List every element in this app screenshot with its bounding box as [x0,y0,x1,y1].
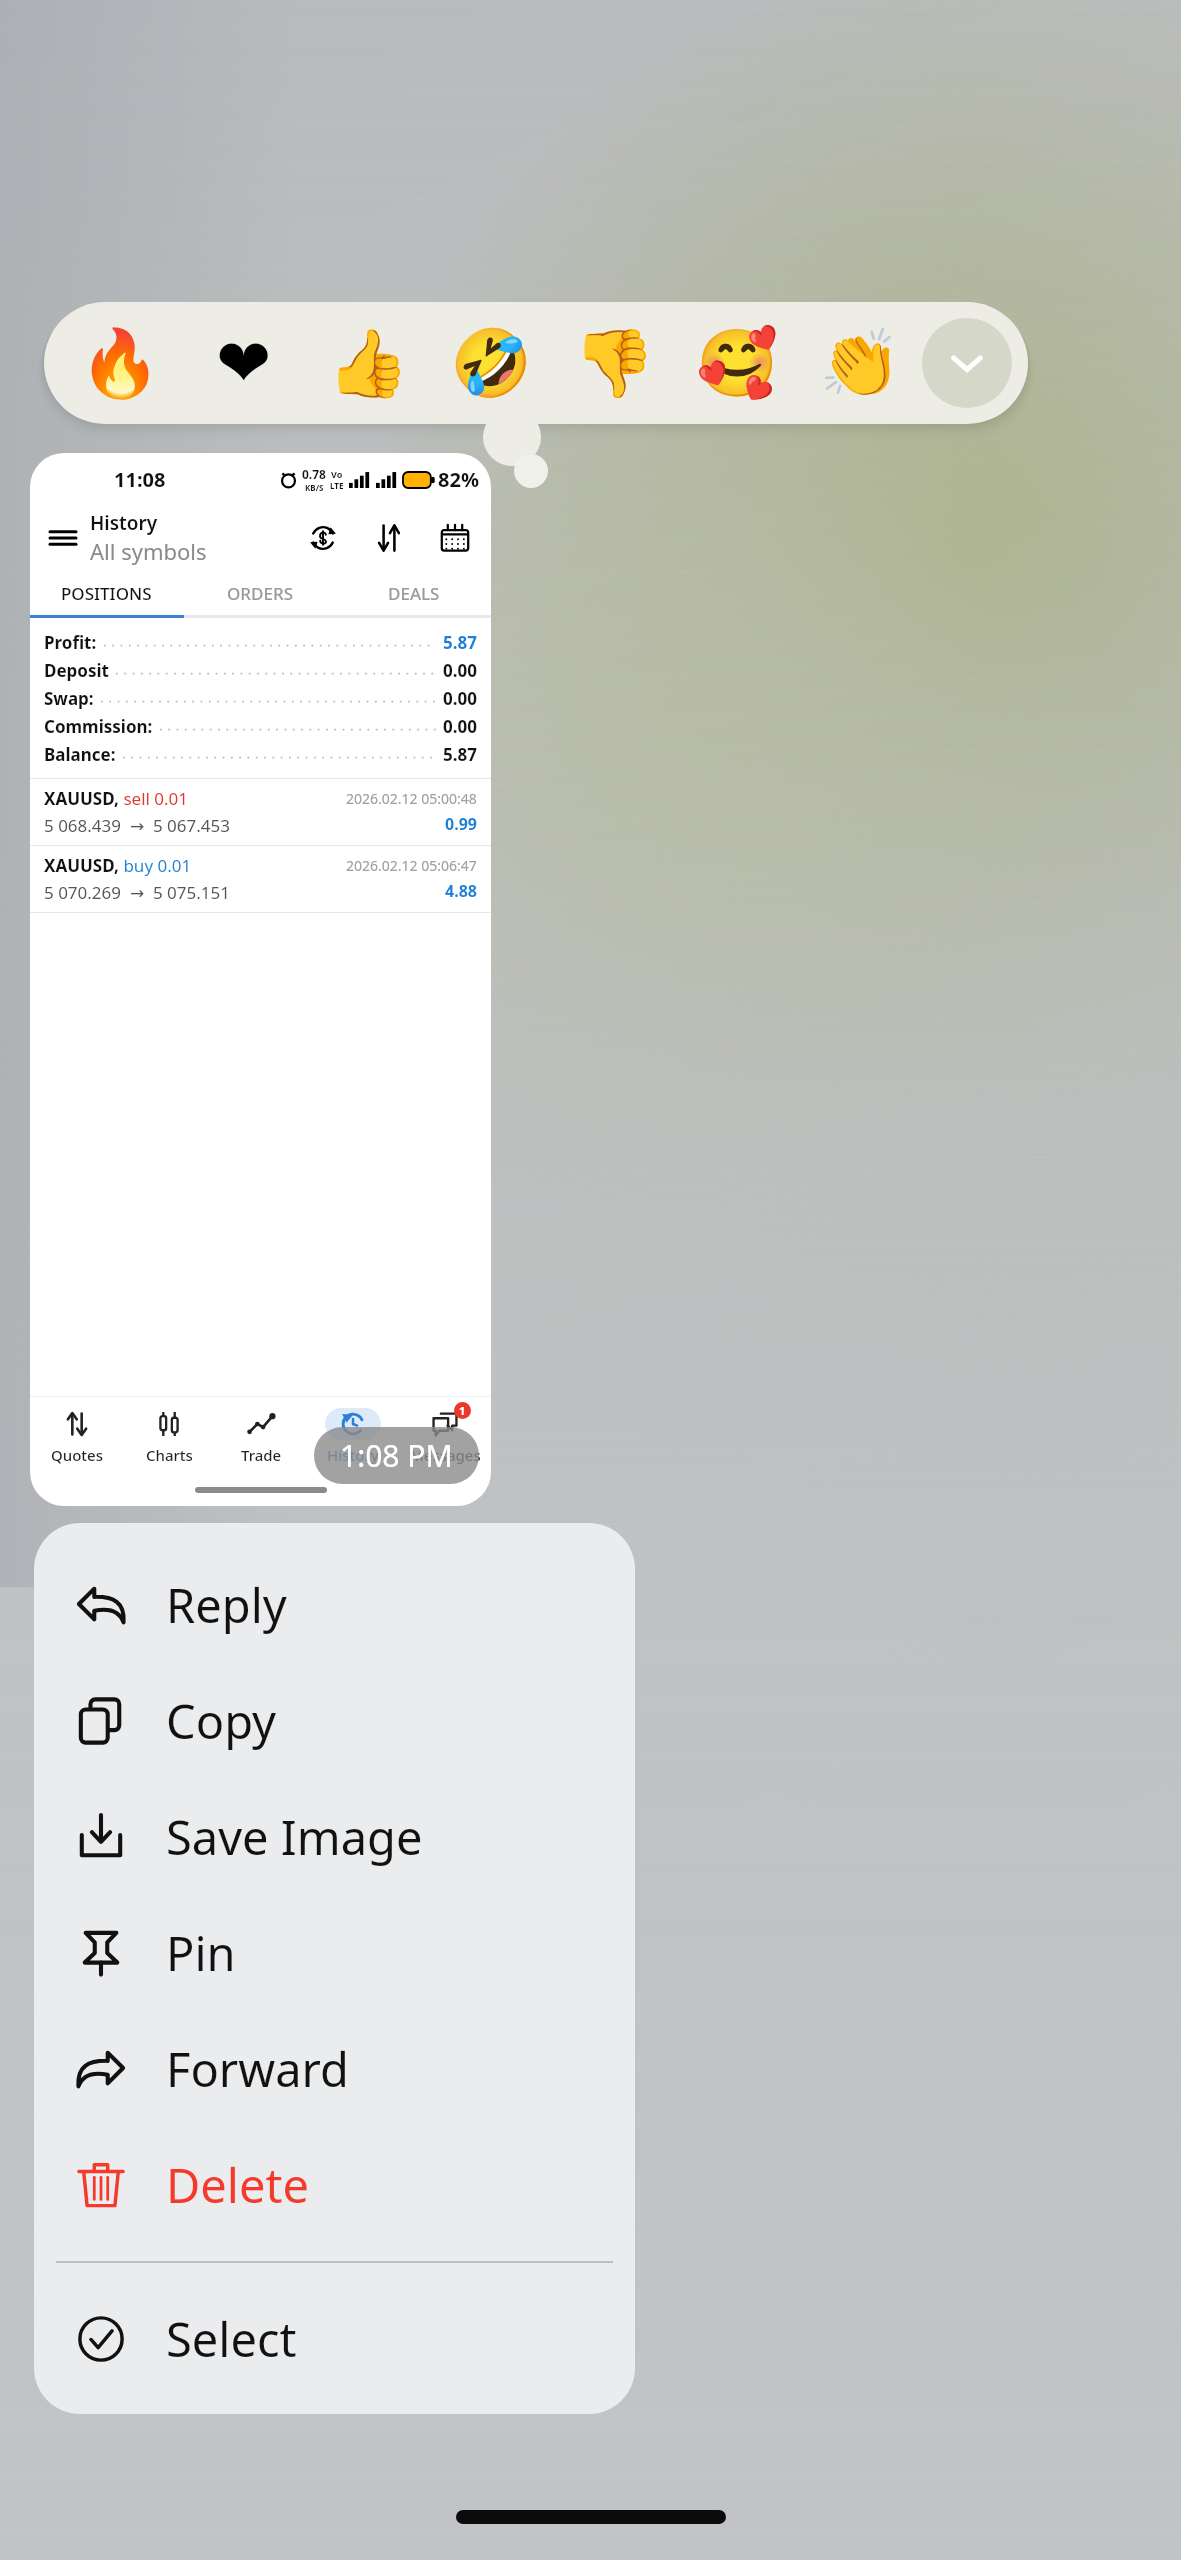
staticText: ORDERS [227,582,294,605]
button[interactable]: React with 👏 [799,302,922,424]
staticText: Commission: [44,715,153,738]
staticText: XAUUSD, [44,854,119,877]
staticText: 5 070.269 → 5 075.151 [44,881,231,904]
staticText: Forward [166,2037,349,2101]
button[interactable]: React with 🔥 [58,302,182,424]
staticText: Deposit [44,659,109,682]
staticText: KB/S [305,482,324,493]
staticText: 2026.02.12 05:06:47 [346,856,477,875]
staticText: Select [166,2307,297,2371]
button[interactable]: Pin [34,1895,635,2011]
staticText: 11:08 [114,466,166,493]
button[interactable]: Delete [34,2127,635,2243]
staticText: buy 0.01 [119,854,192,877]
staticText: DEALS [388,582,440,605]
staticText: History [327,1445,379,1465]
staticText: Pin [166,1921,236,1985]
staticText: Balance: [44,743,116,766]
button[interactable]: React with 👍 [306,302,430,424]
staticText: 2026.02.12 05:00:48 [346,789,477,808]
staticText: Charts [146,1445,193,1465]
staticText: 0.00 [443,659,477,682]
staticText: 👎 [573,325,656,402]
staticText: 0.78 [302,466,326,482]
staticText: Quotes [51,1445,103,1465]
button[interactable]: Select [34,2281,635,2397]
staticText: LTE [330,480,344,491]
staticText: XAUUSD, [44,787,119,810]
staticText: 82% [438,466,479,493]
button[interactable]: ORDERS [183,571,337,615]
staticText: ❤️ [216,325,272,402]
staticText: All symbols [90,536,207,566]
staticText: 0.00 [443,715,477,738]
button[interactable]: 1 [399,1396,491,1474]
staticText: Reply [166,1573,287,1637]
staticText: 5.87 [443,743,477,766]
button[interactable]: Charts [123,1396,215,1474]
staticText: 👏 [819,325,902,402]
button[interactable]: Currency conversion [301,516,345,560]
staticText: 🔥 [79,325,162,402]
button[interactable]: Select period [433,516,477,560]
button[interactable]: XAUUSD, [30,845,491,912]
staticText: Save Image [166,1805,423,1869]
button[interactable]: DEALS [337,571,491,615]
staticText: 1:08 PM [340,1435,453,1476]
button[interactable]: Menu [42,517,84,559]
staticText: 5 068.439 → 5 067.453 [44,814,231,837]
button[interactable]: Forward [34,2011,635,2127]
staticText: 5.87 [443,631,477,654]
staticText: 👍 [327,325,410,402]
staticText: Vo [331,468,343,480]
button[interactable]: React with 👎 [553,302,676,424]
button[interactable]: React with 🥰 [676,302,799,424]
button[interactable]: More reactions [922,318,1012,408]
staticText: 0.00 [443,687,477,710]
button[interactable]: React with ❤️ [182,302,306,424]
button[interactable]: History [307,1396,399,1474]
staticText: 4.88 [445,880,477,902]
button[interactable]: Trade [215,1396,307,1474]
staticText: 0.99 [445,813,477,835]
staticText: POSITIONS [61,582,152,605]
button[interactable]: Quotes [30,1396,123,1474]
staticText: 1 [459,1403,466,1418]
staticText: sell 0.01 [119,787,189,810]
staticText: Trade [241,1445,282,1465]
button[interactable]: Reply [34,1547,635,1663]
staticText: History [90,510,158,536]
button[interactable]: POSITIONS [30,571,183,615]
staticText: Messages [410,1445,481,1465]
button[interactable]: Save Image [34,1779,635,1895]
button[interactable]: XAUUSD, [30,778,491,845]
button[interactable]: Sort [367,516,411,560]
staticText: 🥰 [696,325,779,402]
staticText: Swap: [44,687,94,710]
staticText: Copy [166,1689,277,1753]
button[interactable]: Copy [34,1663,635,1779]
staticText: Delete [166,2153,309,2217]
staticText: Profit: [44,631,97,654]
button[interactable]: React with 🤣 [430,302,553,424]
staticText: 🤣 [450,325,533,402]
